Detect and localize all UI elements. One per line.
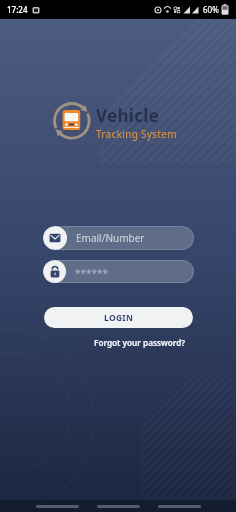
staticText: Tracking System — [96, 127, 177, 141]
button[interactable] — [36, 505, 79, 508]
staticText: 17:24 — [7, 4, 28, 15]
button[interactable]: Email/Number — [43, 226, 194, 250]
button[interactable]: ****** — [43, 260, 194, 283]
staticText: 60% — [203, 4, 219, 15]
button[interactable] — [97, 505, 140, 508]
staticText: Email/Number — [76, 231, 145, 245]
button[interactable]: Forgot your password? — [94, 337, 186, 348]
staticText: ****** — [75, 266, 109, 280]
staticText: Forgot your password? — [94, 337, 186, 348]
staticText: LOGIN — [104, 312, 134, 324]
button[interactable]: LOGIN — [44, 307, 193, 328]
button[interactable] — [158, 505, 201, 508]
staticText: Vehicle — [96, 104, 160, 127]
